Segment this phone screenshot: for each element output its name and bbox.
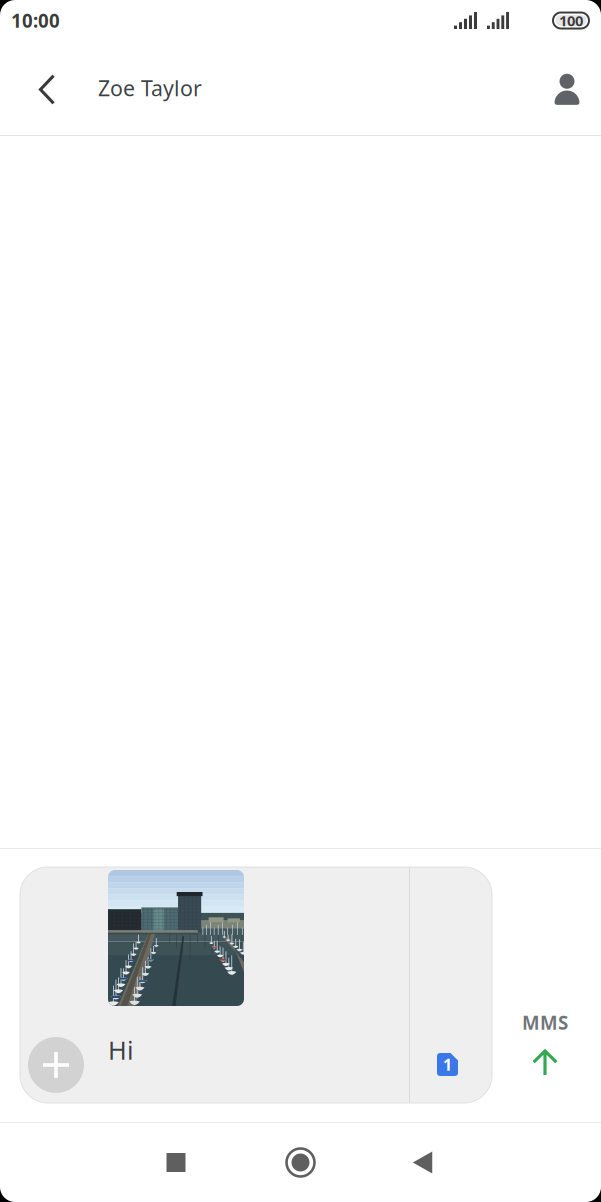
- button[interactable]: Home: [239, 1123, 361, 1202]
- staticText: Zoe Taylor: [98, 74, 202, 102]
- staticText: MMS: [522, 1010, 568, 1035]
- button[interactable]: Back: [361, 1123, 483, 1202]
- staticText: 1: [443, 1054, 452, 1075]
- staticText: 100: [559, 11, 583, 30]
- staticText: 10:00: [11, 8, 60, 33]
- button[interactable]: Add attachment: [28, 1037, 84, 1093]
- button[interactable]: Contact details: [543, 59, 591, 119]
- staticText: Hi: [108, 1033, 134, 1067]
- button[interactable]: Send MMS: [501, 867, 589, 1103]
- button[interactable]: Recent apps: [117, 1123, 239, 1202]
- button[interactable]: Back: [20, 59, 74, 119]
